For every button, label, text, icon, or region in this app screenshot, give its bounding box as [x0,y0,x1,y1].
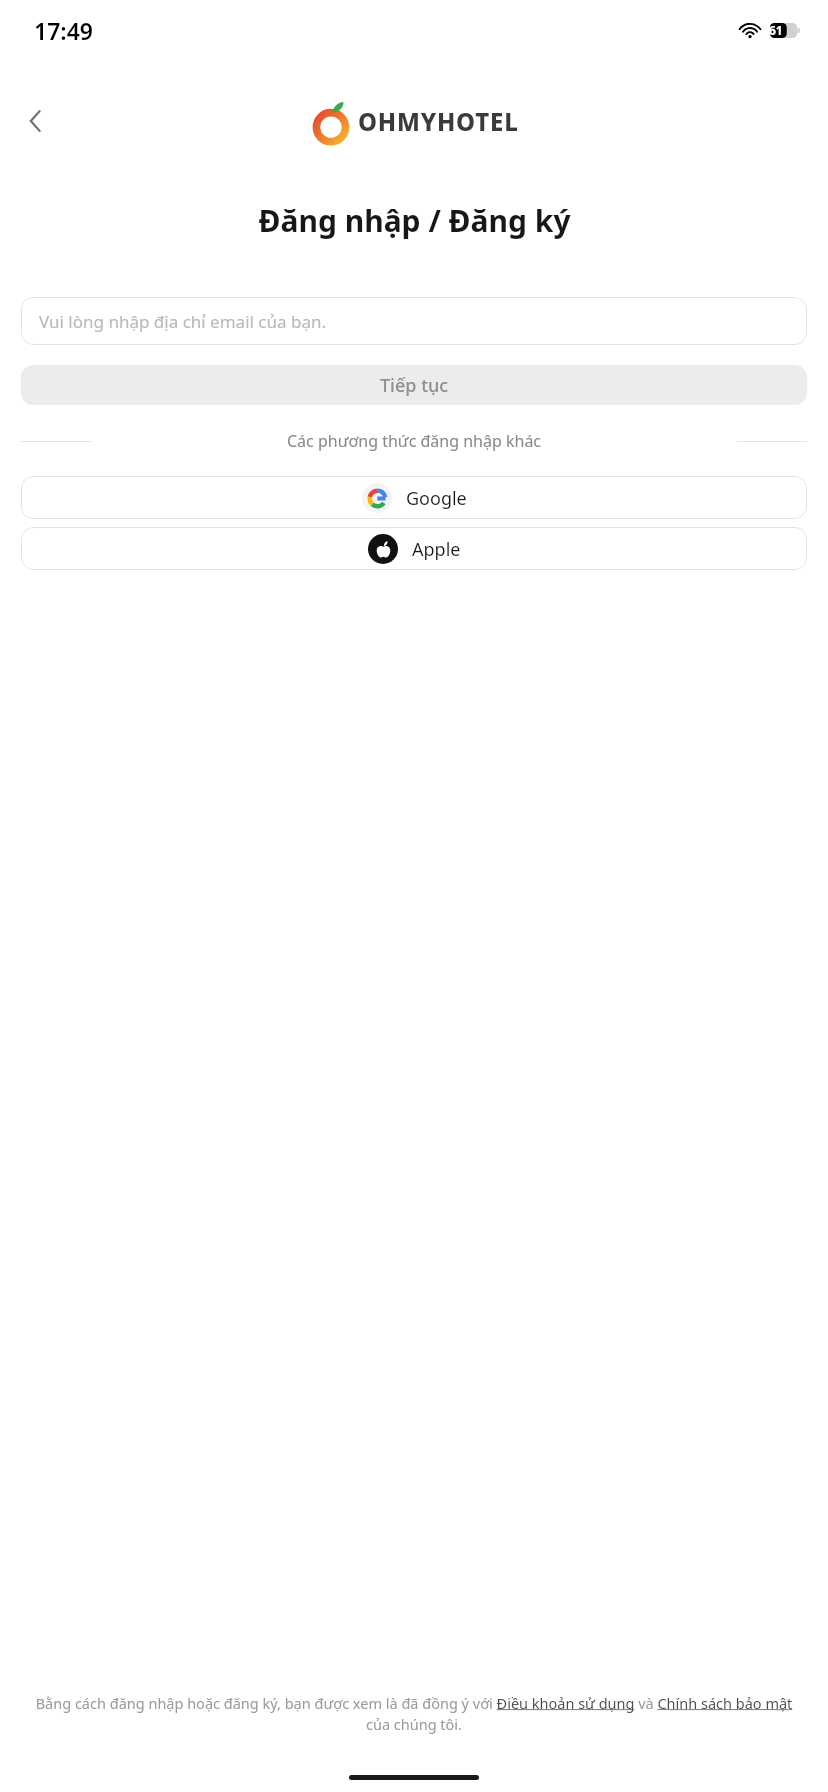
button[interactable]: Vui lòng nhập địa chỉ email của bạn. [21,297,807,345]
staticText: Google [406,486,467,511]
staticText: Tiếp tục [380,373,449,398]
staticText: Đăng nhập / Đăng ký [258,200,571,241]
button[interactable]: Back [10,95,62,147]
staticText: OHMYHOTEL [358,105,519,138]
button[interactable]: Tiếp tục [21,365,807,405]
staticText: 61 [769,22,783,38]
staticText: Bằng cách đăng nhập hoặc đăng ký, bạn đư… [28,1693,800,1735]
staticText: Vui lòng nhập địa chỉ email của bạn. [39,310,327,333]
staticText: 17:49 [34,15,93,46]
staticText: Các phương thức đăng nhập khác [287,430,542,452]
button[interactable]: Apple [21,527,807,570]
staticText: Apple [412,537,461,562]
button[interactable]: Google [21,476,807,519]
